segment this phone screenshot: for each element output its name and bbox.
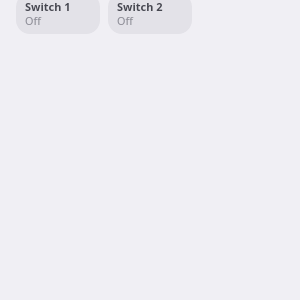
staticText: Switch 1 <box>25 0 71 14</box>
staticText: Off <box>117 13 133 28</box>
button[interactable]: Switch 1 <box>16 0 100 34</box>
button[interactable]: Switch 2 <box>108 0 192 34</box>
staticText: Off <box>25 13 41 28</box>
staticText: Switch 2 <box>117 0 163 14</box>
